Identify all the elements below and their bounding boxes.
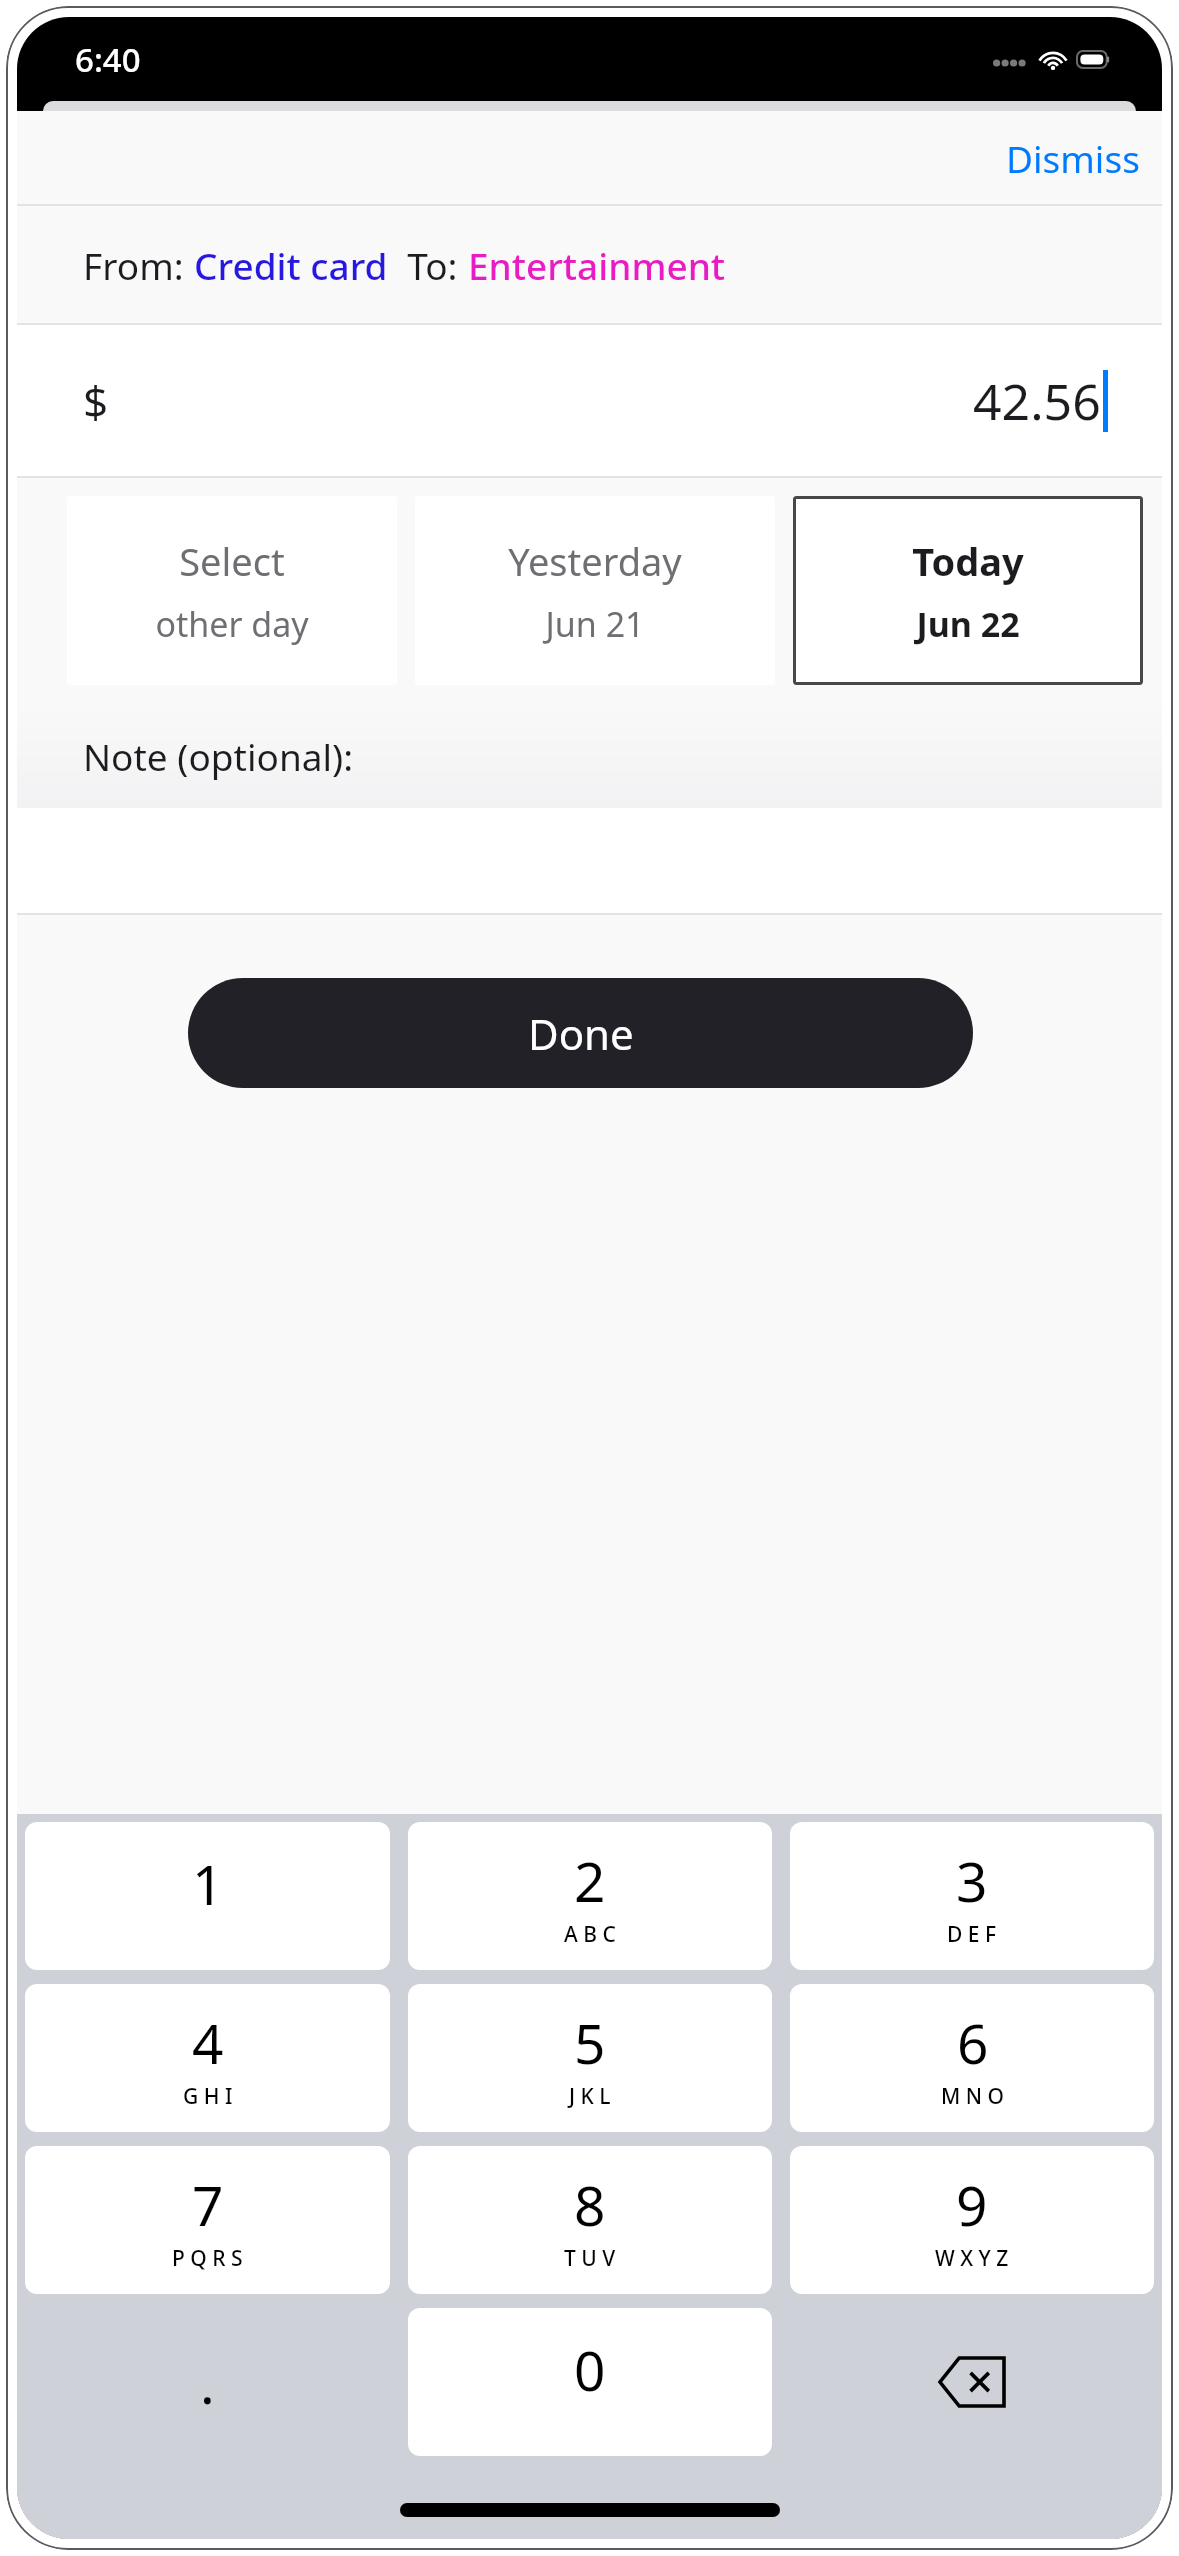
staticText: 4: [192, 2005, 224, 2080]
staticText: G H I: [183, 2082, 233, 2111]
button[interactable]: Done: [188, 978, 973, 1088]
staticText: 9: [956, 2167, 988, 2242]
staticText: 8: [574, 2167, 606, 2242]
staticText: $: [83, 371, 109, 431]
button[interactable]: 4: [25, 1984, 390, 2132]
staticText: J K L: [569, 2082, 611, 2111]
button[interactable]: Credit card: [194, 240, 388, 290]
staticText: 0: [574, 2332, 606, 2407]
staticText: 42.56: [973, 367, 1101, 435]
staticText: Note (optional):: [83, 731, 354, 781]
button[interactable]: Yesterday: [415, 496, 775, 685]
button[interactable]: 0: [408, 2308, 772, 2456]
button[interactable]: Decimal point: [25, 2308, 390, 2456]
staticText: A B C: [564, 1920, 616, 1949]
staticText: T U V: [564, 2244, 616, 2273]
staticText: 2: [574, 1843, 606, 1918]
staticText: Entertainment: [468, 240, 726, 290]
staticText: 6: [957, 2005, 989, 2080]
staticText: To:: [388, 240, 468, 290]
staticText: other day: [155, 601, 309, 647]
staticText: From:: [83, 240, 194, 290]
button[interactable]: 6: [790, 1984, 1154, 2132]
staticText: 1: [192, 1846, 224, 1921]
button[interactable]: 2: [408, 1822, 772, 1970]
button[interactable]: 5: [408, 1984, 772, 2132]
staticText: Select: [179, 535, 285, 587]
button[interactable]: 3: [790, 1822, 1154, 1970]
button[interactable]: Select: [67, 496, 397, 685]
staticText: Yesterday: [508, 535, 682, 587]
button[interactable]: $: [17, 325, 1162, 476]
staticText: 3: [956, 1843, 988, 1918]
staticText: Today: [912, 535, 1024, 587]
staticText: 5: [574, 2005, 606, 2080]
button[interactable]: 8: [408, 2146, 772, 2294]
staticText: D E F: [947, 1920, 997, 1949]
button[interactable]: Backspace: [790, 2308, 1154, 2456]
button[interactable]: Today: [793, 496, 1143, 685]
staticText: M N O: [941, 2082, 1004, 2111]
staticText: .: [200, 2345, 215, 2420]
button[interactable]: 7: [25, 2146, 390, 2294]
staticText: 6:40: [75, 37, 141, 82]
staticText: Dismiss: [1006, 133, 1140, 183]
staticText: Done: [528, 1005, 634, 1062]
button[interactable]: 9: [790, 2146, 1154, 2294]
staticText: P Q R S: [172, 2244, 243, 2273]
staticText: Credit card: [194, 240, 388, 290]
staticText: 7: [192, 2167, 224, 2242]
staticText: Jun 21: [545, 601, 645, 647]
staticText: W X Y Z: [935, 2244, 1009, 2273]
staticText: Jun 22: [916, 601, 1020, 647]
button[interactable]: Dismiss: [984, 123, 1162, 193]
button[interactable]: 1: [25, 1822, 390, 1970]
button[interactable]: Entertainment: [468, 240, 726, 290]
